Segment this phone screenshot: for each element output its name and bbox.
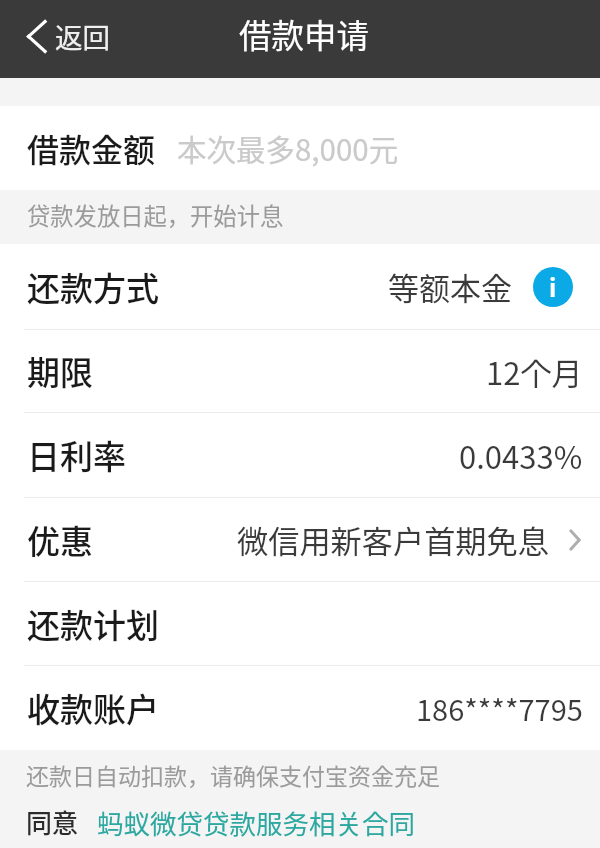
- button[interactable]: 还款方式: [0, 244, 600, 330]
- staticText: 收款账户: [27, 684, 159, 732]
- staticText: 186****7795: [416, 687, 583, 729]
- button[interactable]: 期限: [0, 330, 600, 413]
- button[interactable]: 优惠: [0, 498, 600, 582]
- staticText: 同意: [26, 803, 79, 841]
- staticText: 期限: [27, 347, 93, 395]
- staticText: 12个月: [486, 349, 583, 394]
- staticText: i: [549, 269, 557, 304]
- staticText: 优惠: [27, 516, 93, 564]
- button[interactable]: 蚂蚁微贷贷款服务相关合同: [97, 803, 415, 841]
- staticText: 还款计划: [27, 600, 159, 648]
- staticText: 贷款发放日起，开始计息: [27, 198, 284, 232]
- button[interactable]: Back: [0, 6, 128, 72]
- staticText: 本次最多8,000元: [177, 127, 399, 170]
- staticText: 还款日自动扣款，请确保支付宝资金充足: [26, 758, 440, 791]
- staticText: 微信用新客户首期免息: [237, 517, 549, 562]
- staticText: 日利率: [27, 431, 126, 479]
- button[interactable]: Info: [533, 267, 573, 307]
- staticText: 还款方式: [27, 263, 159, 311]
- staticText: 借款金额: [27, 125, 156, 171]
- staticText: 借款申请: [239, 10, 370, 57]
- staticText: 等额本金: [388, 264, 512, 309]
- button[interactable]: 日利率: [0, 413, 600, 498]
- staticText: 0.0433%: [459, 433, 583, 478]
- button[interactable]: 收款账户: [0, 666, 600, 750]
- staticText: 蚂蚁微贷贷款服务相关合同: [97, 803, 415, 841]
- button[interactable]: 借款金额: [0, 106, 600, 190]
- staticText: 返回: [55, 16, 110, 56]
- button[interactable]: 还款计划: [0, 582, 600, 666]
